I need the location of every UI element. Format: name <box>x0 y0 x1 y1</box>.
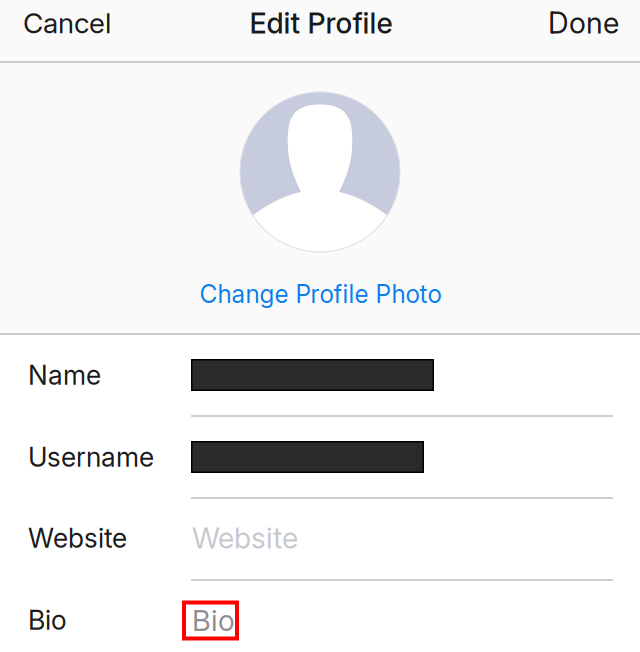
staticText: Change Profile Photo <box>199 279 441 309</box>
button[interactable]: Done <box>529 0 640 46</box>
button[interactable]: Cancel <box>0 0 133 46</box>
button[interactable]: Change Profile Photo <box>160 267 480 321</box>
staticText: Website <box>28 522 127 554</box>
button[interactable]: Profile photo <box>240 92 400 252</box>
staticText: Done <box>548 5 619 41</box>
staticText: Cancel <box>23 6 111 40</box>
staticText: Website <box>192 521 298 555</box>
staticText: Bio <box>192 603 235 638</box>
staticText: Username <box>28 441 154 473</box>
staticText: Name <box>28 359 101 391</box>
staticText: Edit Profile <box>249 6 392 40</box>
staticText: Bio <box>28 604 67 636</box>
